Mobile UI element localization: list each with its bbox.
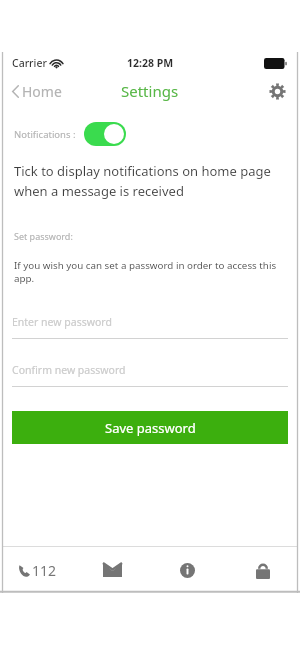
button[interactable]: Lock [225, 547, 300, 593]
button[interactable]: Home [10, 78, 64, 105]
button[interactable]: Information [150, 547, 225, 593]
button[interactable]: Settings [265, 79, 289, 103]
staticText: Tick to display notifications on home pa… [14, 162, 276, 200]
staticText: Home [22, 82, 62, 101]
staticText: Carrier [12, 56, 47, 70]
staticText: 12:28 PM [127, 56, 174, 70]
button[interactable]: Enter new password [12, 315, 288, 339]
staticText: Settings [121, 81, 179, 101]
staticText: Save password [105, 419, 196, 437]
staticText: Set password: [14, 230, 73, 242]
staticText: Enter new password [12, 315, 112, 329]
staticText: If you wish you can set a password in or… [14, 259, 290, 285]
button[interactable]: Confirm new password [12, 363, 288, 387]
button[interactable]: Notifications : [12, 120, 130, 148]
staticText: Confirm new password [12, 363, 126, 377]
button[interactable]: Save password [12, 411, 288, 444]
staticText: 112 [32, 561, 57, 580]
button[interactable]: Call 112 [0, 547, 75, 593]
button[interactable]: Messages [75, 547, 150, 593]
staticText: Notifications : [14, 128, 76, 141]
